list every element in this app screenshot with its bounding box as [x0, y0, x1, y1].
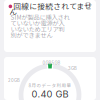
staticText: 0GB	[42, 60, 51, 65]
staticText: 回線に接続されてませ	[13, 0, 92, 12]
staticText: 別ができません	[11, 31, 53, 40]
staticText: 8月のデータ利用量	[28, 82, 71, 89]
staticText: 20GB	[8, 78, 20, 83]
staticText: 3GB	[68, 66, 77, 71]
staticText: SIMが製品に挿入され	[11, 13, 70, 22]
button[interactable]: 回線に接続されてませ	[4, 0, 96, 52]
staticText: ん	[9, 6, 17, 17]
staticText: ていないか電源が入	[11, 19, 65, 28]
staticText: 5GB	[51, 60, 60, 65]
staticText: 0.40 GB	[31, 89, 68, 100]
button[interactable]: 詳細	[84, 1, 92, 9]
staticText: いないためエリア判	[11, 25, 65, 34]
